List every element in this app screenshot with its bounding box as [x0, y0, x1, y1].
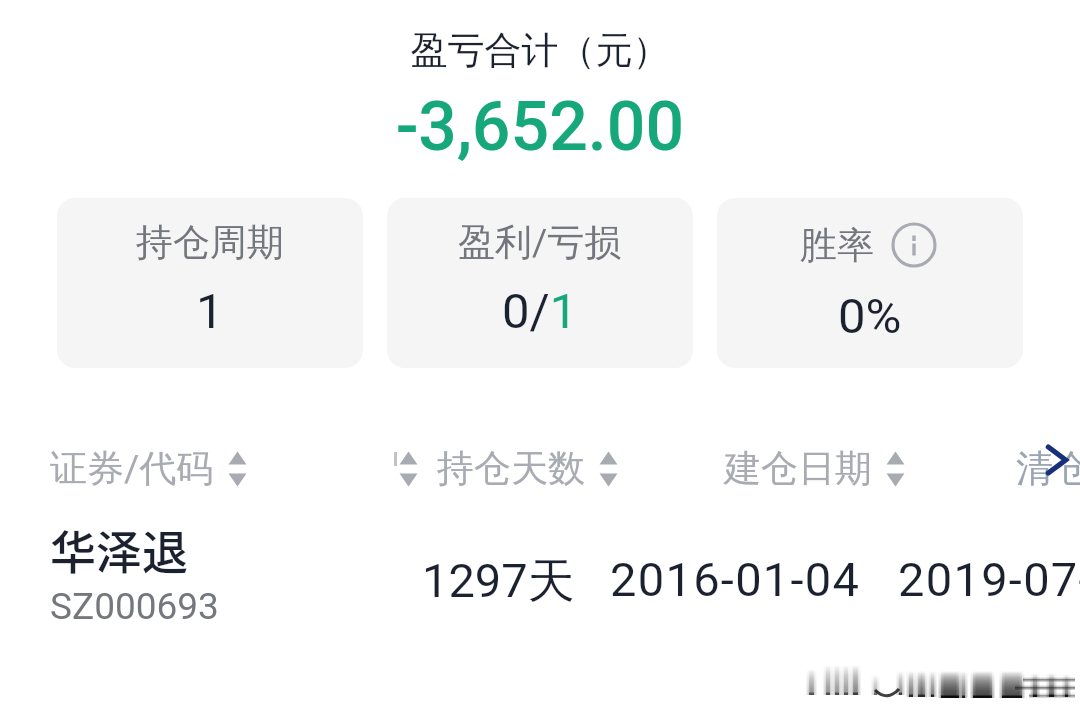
staticText: 1297天 [422, 552, 575, 611]
staticText: 1 [196, 283, 224, 340]
staticText: 持仓周期 [136, 219, 284, 266]
button[interactable]: 华泽退 [50, 516, 219, 628]
button[interactable]: 持仓天数 [437, 445, 619, 492]
staticText: 0/1 [502, 283, 578, 340]
staticText: 盈利/亏损 [458, 219, 622, 266]
staticText: 2019-07-19 [898, 552, 1080, 607]
other: Info [888, 219, 940, 271]
staticText: 0% [838, 288, 902, 345]
staticText: 持仓天数 [437, 445, 585, 492]
staticText: SZ000693 [50, 585, 219, 628]
staticText: 证券/代码 [50, 445, 214, 492]
staticText: 胜率 [800, 222, 874, 269]
button[interactable]: 胜率 [717, 198, 1023, 368]
staticText: 清仓日期 [1016, 445, 1080, 492]
staticText: 建仓日期 [724, 445, 872, 492]
staticText: 华泽退 [50, 516, 188, 583]
other: More [1044, 442, 1080, 478]
button[interactable]: 证券/代码 [50, 445, 248, 492]
staticText: 盈亏合计（元） [0, 27, 1080, 74]
staticText: -3,652.00 [0, 87, 1080, 167]
button[interactable]: 建仓日期 [724, 445, 906, 492]
button[interactable]: 盈利/亏损 [387, 198, 693, 368]
staticText: 2016-01-04 [610, 552, 861, 607]
button[interactable]: 持仓周期 [57, 198, 363, 368]
button[interactable]: 清仓日期 [1016, 445, 1080, 492]
